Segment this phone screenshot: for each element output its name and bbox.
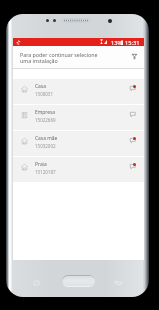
staticText: 1500031	[35, 91, 54, 97]
staticText: Casa	[35, 83, 46, 90]
staticText: 15032002	[35, 143, 56, 149]
button[interactable]: Mensagens	[128, 157, 144, 183]
button[interactable]: Mensagens	[128, 131, 144, 157]
button[interactable]: Casa mãe	[13, 131, 144, 157]
staticText: 15022669	[35, 117, 56, 123]
staticText: 15120187	[35, 169, 56, 175]
staticText: 15:31	[125, 39, 140, 47]
staticText: Casa mãe	[35, 135, 58, 142]
button[interactable]: Casa	[13, 79, 144, 105]
button[interactable]: Mensagens	[128, 79, 144, 105]
button[interactable]: Praia	[13, 157, 144, 183]
button[interactable]: Mensagens	[128, 105, 144, 131]
button[interactable]: Filtrar	[127, 49, 142, 64]
button[interactable]: Empresa	[13, 105, 144, 131]
staticText: Para poder continuar selecione uma insta…	[20, 51, 98, 65]
staticText: 13%	[111, 39, 123, 47]
staticText: Empresa	[35, 109, 56, 116]
staticText: Praia	[35, 161, 47, 168]
